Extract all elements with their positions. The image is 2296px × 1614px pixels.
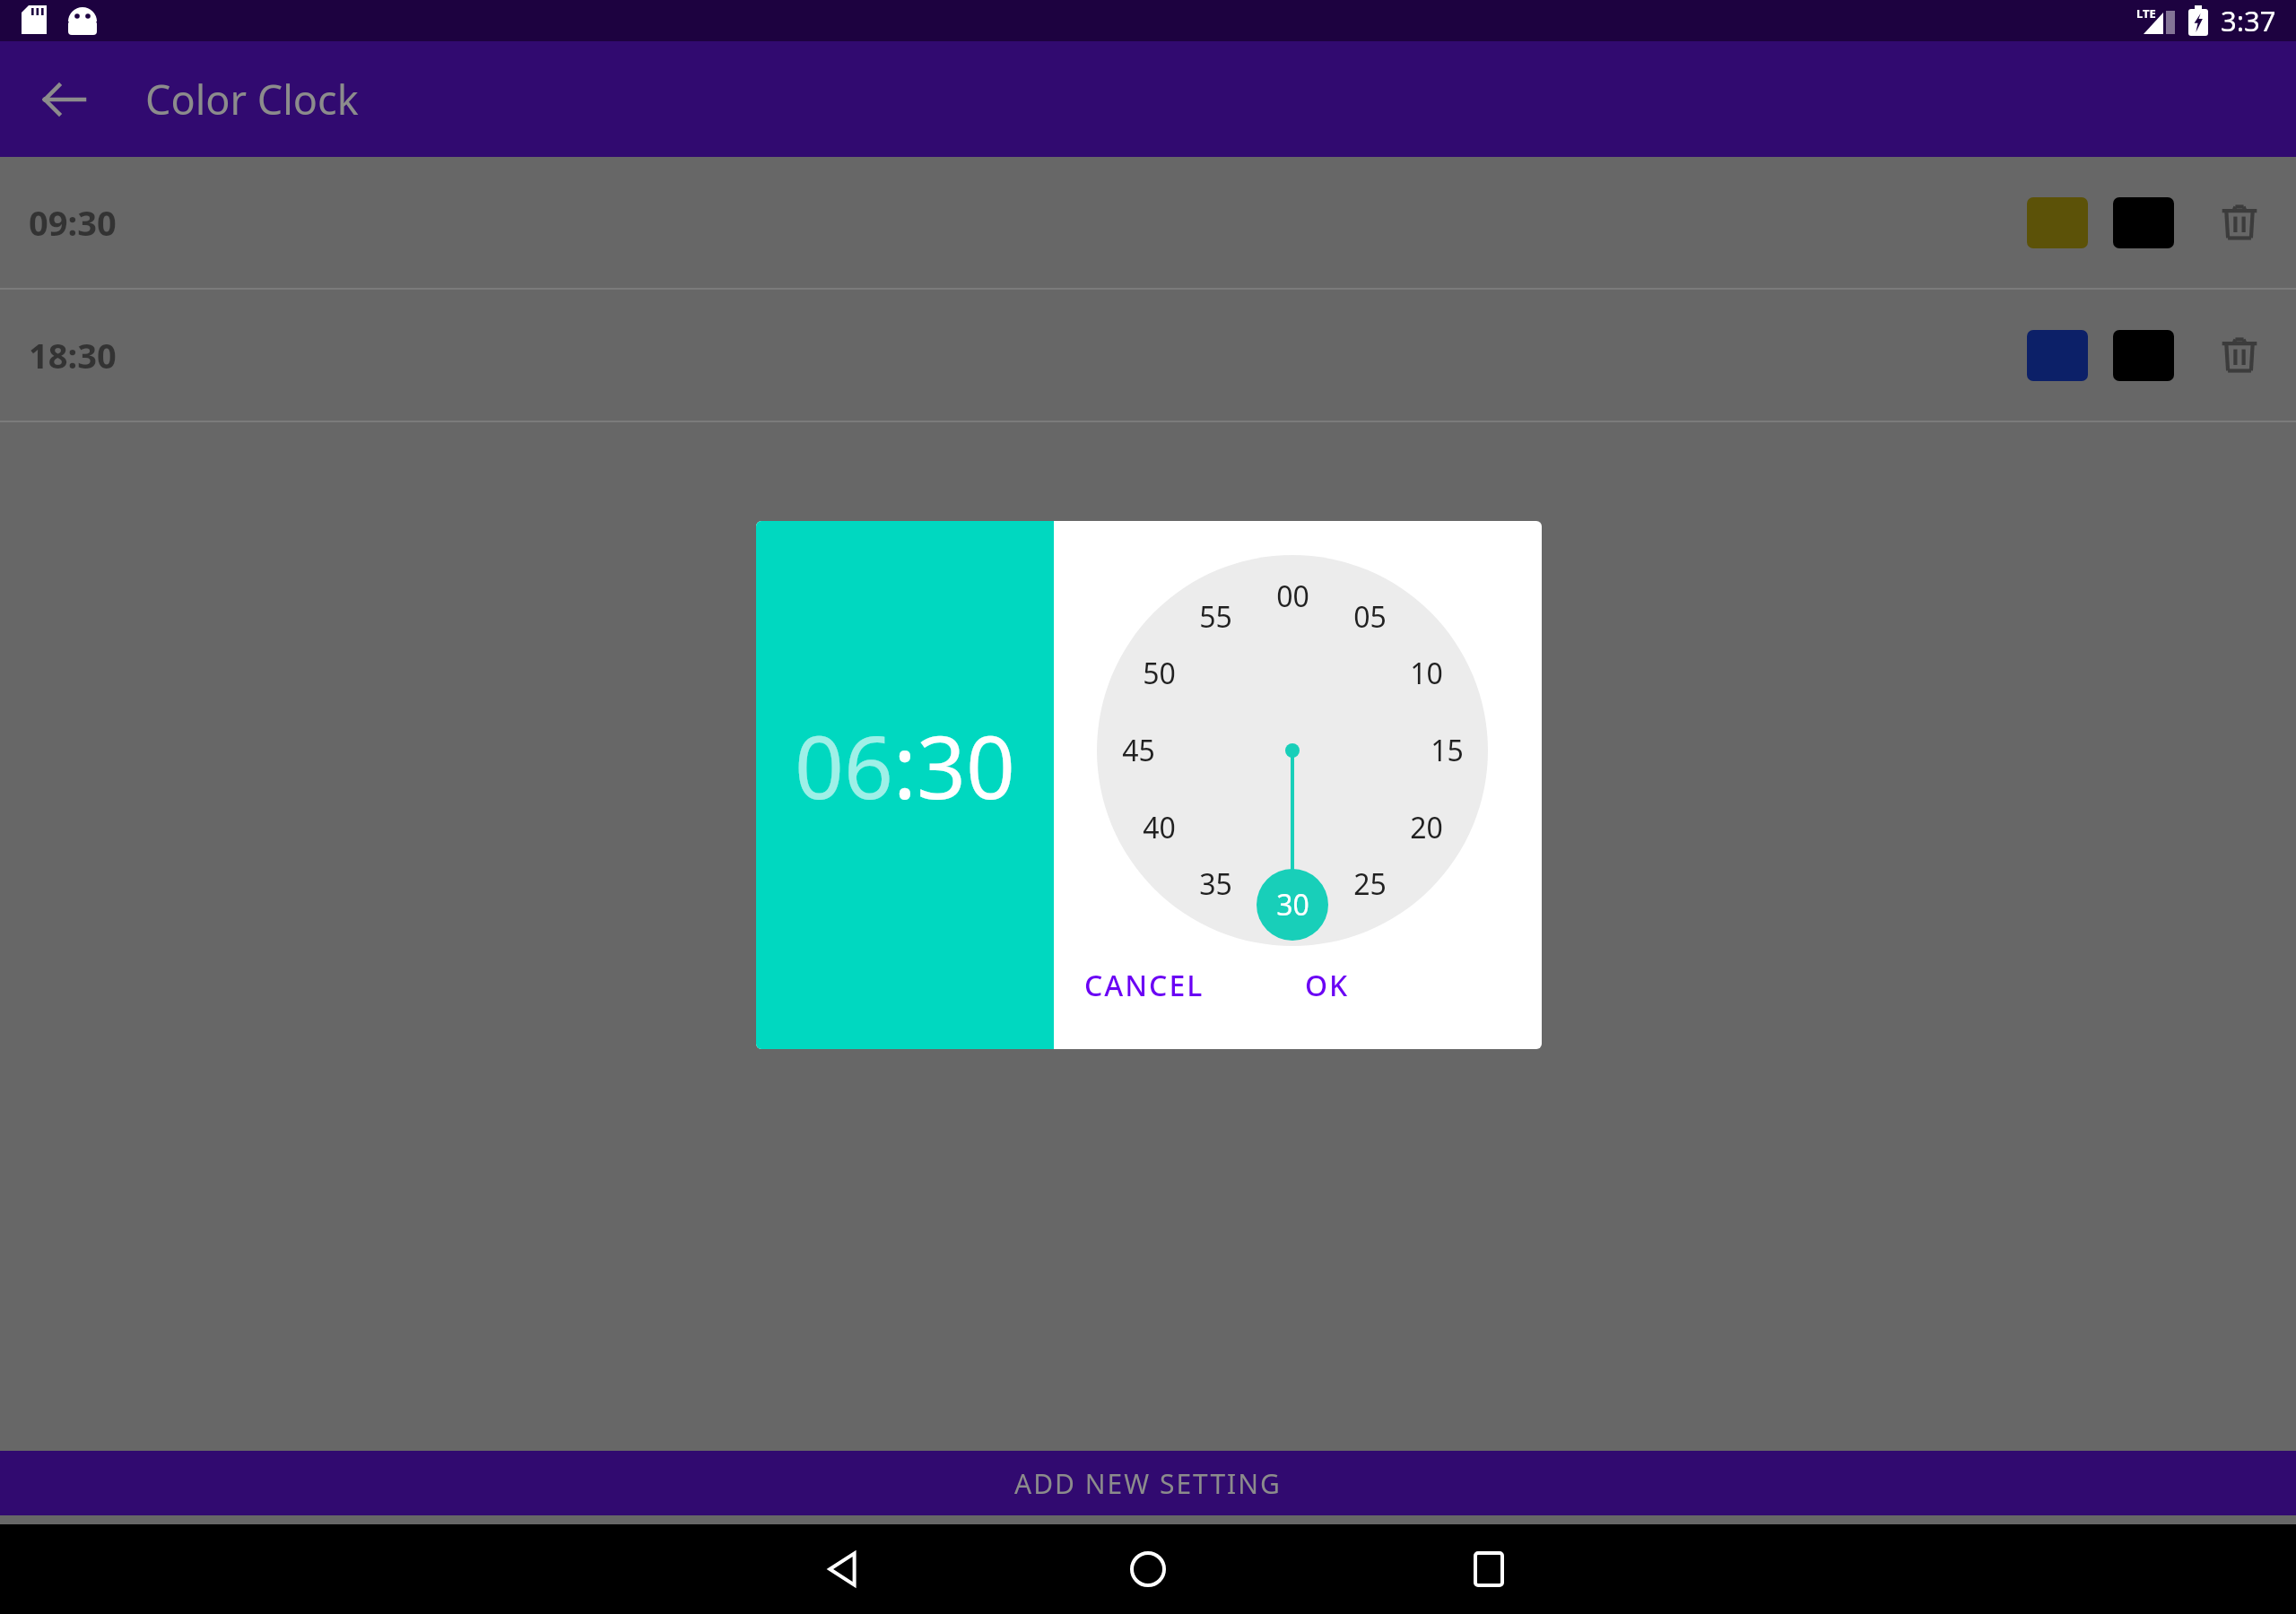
button[interactable]: 55 xyxy=(1188,590,1242,644)
staticText: 20 xyxy=(1410,808,1443,847)
staticText: 15 xyxy=(1431,731,1464,770)
button[interactable]: Text colour xyxy=(2113,197,2174,248)
staticText: 55 xyxy=(1199,597,1232,637)
staticText: 18:30 xyxy=(29,332,117,378)
button[interactable]: 50 xyxy=(1132,646,1186,700)
staticText: 06 xyxy=(795,707,893,824)
staticText: Color Clock xyxy=(145,72,359,126)
staticText: 40 xyxy=(1143,808,1176,847)
staticText: 50 xyxy=(1143,654,1176,693)
button[interactable]: 25 xyxy=(1343,857,1396,911)
staticText: 30 xyxy=(1276,885,1309,924)
button[interactable]: Back xyxy=(807,1533,879,1605)
staticText: 10 xyxy=(1410,654,1443,693)
button[interactable]: OK xyxy=(1287,953,1368,1018)
button[interactable]: 00 xyxy=(1265,569,1319,623)
button[interactable]: Background colour xyxy=(2027,197,2088,248)
button[interactable]: 15 xyxy=(1420,724,1474,777)
button[interactable]: Recent apps xyxy=(1453,1533,1525,1605)
button[interactable]: Background colour xyxy=(2027,330,2088,381)
button[interactable]: CANCEL xyxy=(1066,953,1222,1018)
staticText: 25 xyxy=(1353,864,1387,904)
button[interactable]: Text colour xyxy=(2113,330,2174,381)
button[interactable]: 40 xyxy=(1132,801,1186,855)
button[interactable]: 05 xyxy=(1343,590,1396,644)
button[interactable]: 09:30 xyxy=(0,157,2296,288)
staticText: 45 xyxy=(1122,731,1155,770)
button[interactable]: Delete xyxy=(2201,184,2278,261)
staticText: CANCEL xyxy=(1084,966,1205,1005)
button[interactable]: 10 xyxy=(1399,646,1453,700)
button[interactable]: ADD NEW SETTING xyxy=(0,1451,2296,1515)
button[interactable]: 20 xyxy=(1399,801,1453,855)
staticText: OK xyxy=(1305,966,1350,1005)
button[interactable]: Delete xyxy=(2201,317,2278,394)
button[interactable]: 30 xyxy=(1265,878,1319,932)
staticText: LTE xyxy=(2136,5,2156,22)
staticText: ADD NEW SETTING xyxy=(1014,1465,1282,1502)
staticText: 09:30 xyxy=(29,199,117,246)
staticText: 3:37 xyxy=(2221,2,2276,39)
staticText: 30 xyxy=(917,707,1015,824)
button[interactable]: 18:30 xyxy=(0,290,2296,421)
staticText: : xyxy=(893,707,917,824)
button[interactable]: 45 xyxy=(1111,724,1165,777)
staticText: 35 xyxy=(1199,864,1232,904)
button[interactable]: Home xyxy=(1112,1533,1184,1605)
staticText: 05 xyxy=(1353,597,1387,637)
button[interactable]: Back xyxy=(23,58,106,141)
button[interactable]: 35 xyxy=(1188,857,1242,911)
staticText: 00 xyxy=(1276,577,1309,616)
